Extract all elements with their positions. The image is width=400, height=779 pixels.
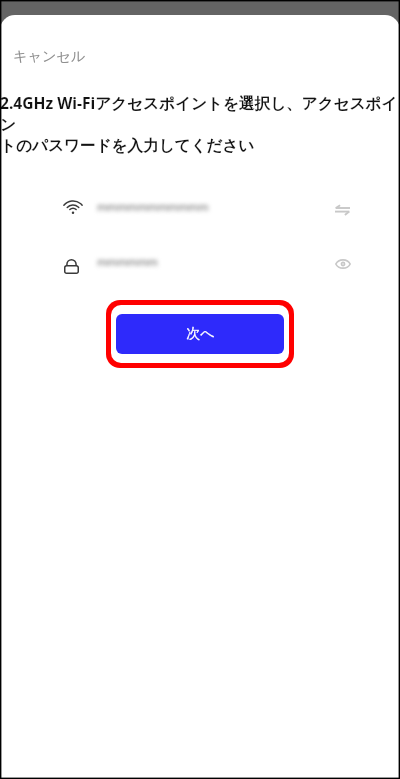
button[interactable]: Show password — [330, 251, 355, 276]
staticText: 次へ — [186, 325, 215, 343]
button[interactable]: Switch network — [330, 197, 355, 222]
button[interactable]: mmmmmmmm — [50, 243, 350, 281]
button[interactable]: 次へ — [116, 314, 284, 354]
staticText: mmmmmmmm — [97, 254, 158, 269]
staticText: 2.4GHz Wi-Fiアクセスポイントを選択し、アクセスポイン トのパスワード… — [0, 92, 400, 155]
button[interactable]: キャンセル — [5, 43, 94, 69]
staticText: mmmmmmmmmmmmm mm — [97, 199, 209, 214]
button[interactable]: mmmmmmmmmmmmm mm — [50, 188, 350, 226]
staticText: キャンセル — [13, 47, 86, 65]
